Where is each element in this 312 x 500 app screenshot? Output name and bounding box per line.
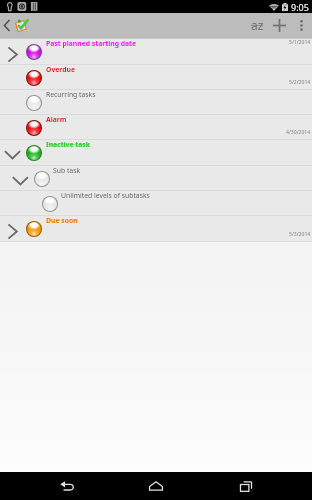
staticText: az bbox=[251, 17, 264, 33]
button[interactable]: Past planned starting date bbox=[0, 39, 312, 65]
staticText: 9:05 bbox=[291, 1, 309, 13]
staticText: Unlimited levels of subtasks bbox=[61, 191, 150, 200]
button[interactable]: Inactive task bbox=[0, 140, 312, 166]
button[interactable]: Recurring tasks bbox=[0, 90, 312, 115]
button[interactable]: Due soon bbox=[0, 216, 312, 242]
staticText: 5/1/2014 bbox=[289, 39, 311, 46]
button[interactable]: Overdue bbox=[0, 65, 312, 90]
staticText: Alarm bbox=[46, 115, 67, 124]
button[interactable]: Sub task bbox=[0, 166, 312, 191]
staticText: Recurring tasks bbox=[46, 90, 96, 99]
staticText: Due soon bbox=[46, 216, 78, 225]
staticText: 4/30/2014 bbox=[286, 129, 311, 136]
staticText: 5/3/2014 bbox=[289, 231, 311, 238]
button[interactable]: Add task bbox=[268, 13, 290, 38]
staticText: Overdue bbox=[46, 65, 75, 74]
button[interactable]: Sort bbox=[247, 13, 268, 38]
staticText: 5/2/2014 bbox=[289, 79, 311, 86]
button[interactable]: Unlimited levels of subtasks bbox=[0, 191, 312, 216]
staticText: Inactive task bbox=[46, 140, 90, 149]
staticText: Sub task bbox=[53, 166, 81, 175]
button[interactable]: Navigate up bbox=[0, 13, 32, 38]
button[interactable]: Recent apps bbox=[223, 472, 269, 500]
button[interactable]: Back bbox=[44, 472, 90, 500]
staticText: Past planned starting date bbox=[46, 39, 137, 48]
button[interactable]: Alarm bbox=[0, 115, 312, 140]
button[interactable]: More options bbox=[290, 13, 312, 38]
button[interactable]: Home bbox=[133, 472, 179, 500]
